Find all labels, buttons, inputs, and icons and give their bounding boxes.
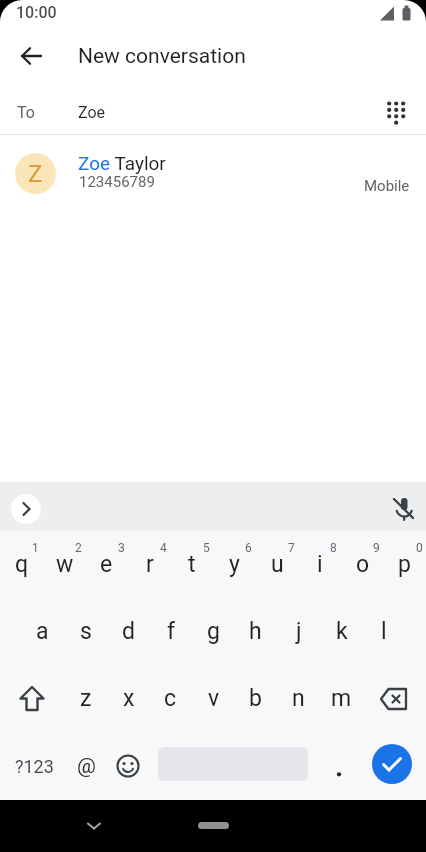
staticText: f	[167, 618, 175, 645]
button[interactable]	[378, 93, 416, 131]
button[interactable]: m	[320, 665, 363, 732]
button[interactable]	[0, 135, 426, 211]
button[interactable]: t	[170, 531, 213, 598]
staticText: To	[17, 103, 35, 122]
staticText: b	[249, 685, 262, 712]
button[interactable]: k	[320, 598, 363, 665]
button[interactable]: u	[256, 531, 299, 598]
button[interactable]: p	[383, 531, 426, 598]
staticText: t	[188, 551, 196, 578]
staticText: Mobile	[364, 177, 410, 195]
button[interactable]: i	[298, 531, 341, 598]
button[interactable]: v	[192, 665, 235, 732]
button[interactable]	[390, 495, 418, 523]
button[interactable]	[0, 665, 64, 732]
button[interactable]	[372, 744, 412, 784]
staticText: h	[249, 618, 262, 645]
button[interactable]	[12, 38, 50, 76]
staticText: u	[271, 551, 284, 578]
button[interactable]	[80, 812, 108, 840]
button[interactable]: o	[341, 531, 384, 598]
button[interactable]: ?123	[6, 732, 62, 800]
staticText: d	[122, 618, 135, 645]
staticText: 123456789	[79, 173, 155, 191]
staticText: j	[296, 618, 302, 645]
staticText: 4	[160, 541, 167, 555]
staticText: 0	[416, 541, 423, 555]
button[interactable]	[11, 494, 41, 524]
staticText: m	[331, 685, 352, 712]
staticText: ?123	[15, 756, 54, 777]
button[interactable]: n	[277, 665, 320, 732]
staticText: 6	[245, 541, 252, 555]
staticText: 2	[75, 541, 82, 555]
button[interactable]: j	[277, 598, 320, 665]
button[interactable]: c	[149, 665, 192, 732]
staticText: n	[292, 685, 305, 712]
staticText: e	[100, 551, 113, 578]
staticText: l	[381, 618, 387, 645]
button[interactable]	[0, 84, 426, 134]
staticText: i	[317, 551, 323, 578]
staticText: Zoe Taylor	[78, 152, 166, 174]
button[interactable]: b	[234, 665, 277, 732]
staticText: k	[336, 618, 348, 645]
staticText: New conversation	[78, 44, 246, 69]
button[interactable]: f	[149, 598, 192, 665]
staticText: Z	[28, 160, 43, 188]
button[interactable]: y	[213, 531, 256, 598]
staticText: g	[207, 618, 220, 645]
button[interactable]: d	[107, 598, 150, 665]
staticText: a	[36, 618, 49, 645]
staticText: @	[77, 754, 96, 779]
button[interactable]: s	[64, 598, 107, 665]
button[interactable]	[108, 732, 148, 800]
staticText: z	[80, 685, 92, 712]
staticText: y	[229, 551, 240, 578]
button[interactable]	[362, 665, 426, 732]
staticText: x	[123, 685, 135, 712]
staticText: q	[15, 551, 29, 578]
button[interactable]: g	[192, 598, 235, 665]
staticText: 5	[203, 541, 210, 555]
staticText: 3	[118, 541, 125, 555]
staticText: Zoe	[78, 103, 106, 122]
staticText: v	[208, 685, 220, 712]
button[interactable]: x	[107, 665, 150, 732]
staticText: 7	[288, 541, 295, 555]
staticText: p	[398, 551, 411, 578]
staticText: 1	[32, 541, 39, 555]
button[interactable]: z	[64, 665, 107, 732]
button[interactable]: w	[43, 531, 86, 598]
button[interactable]: e	[85, 531, 128, 598]
staticText: 10:00	[16, 3, 57, 22]
staticText: o	[356, 551, 370, 578]
button[interactable]: l	[362, 598, 405, 665]
button[interactable]: a	[21, 598, 64, 665]
staticText: s	[80, 618, 92, 645]
button[interactable]	[318, 732, 360, 800]
staticText: w	[56, 551, 74, 578]
staticText: r	[146, 551, 154, 578]
staticText: 8	[330, 541, 337, 555]
button[interactable]: @	[64, 732, 108, 800]
button[interactable]: h	[234, 598, 277, 665]
button[interactable]: r	[128, 531, 171, 598]
button[interactable]: q	[0, 531, 43, 598]
staticText: c	[164, 685, 177, 712]
staticText: 9	[373, 541, 380, 555]
